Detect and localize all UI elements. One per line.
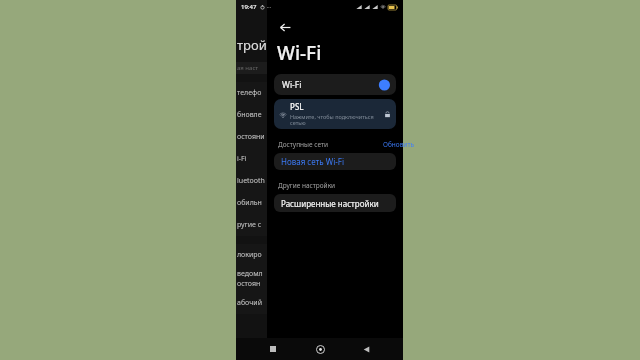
staticText: Wi-Fi <box>277 40 322 66</box>
staticText: абочий <box>237 298 262 308</box>
button[interactable]: Wi-Fi <box>274 74 396 95</box>
staticText: ведомл <box>237 269 263 279</box>
staticText: локиро <box>237 250 262 260</box>
button[interactable]: Back <box>276 18 294 36</box>
staticText: бновле <box>237 110 262 120</box>
staticText: Wi-Fi <box>282 79 302 91</box>
staticText: luetooth <box>237 176 265 186</box>
staticText: обильны <box>237 198 267 208</box>
staticText: ругие с <box>237 220 262 230</box>
button[interactable]: PSL <box>274 99 396 129</box>
staticText: Расширенные настройки <box>281 198 379 209</box>
staticText: 19:47 <box>241 3 257 11</box>
staticText: Новая сеть Wi-Fi <box>281 156 344 167</box>
staticText: PSL <box>290 101 304 112</box>
staticText: остоян <box>237 279 261 289</box>
staticText: трой <box>237 36 267 54</box>
staticText: Нажмите, чтобы подключиться сетью <box>290 113 374 127</box>
button[interactable]: Расширенные настройки <box>274 194 396 212</box>
staticText: ··· <box>267 4 272 11</box>
staticText: Другие настройки <box>278 181 336 190</box>
button[interactable]: Обновить <box>383 140 414 149</box>
staticText: ая наст <box>237 64 259 72</box>
staticText: остояни <box>237 132 265 142</box>
button[interactable]: Back <box>356 339 376 359</box>
staticText: i-Fi <box>237 154 247 164</box>
button[interactable]: Recent apps <box>263 339 283 359</box>
staticText: телефо <box>237 88 262 98</box>
button[interactable]: Home <box>310 339 330 359</box>
button[interactable]: Новая сеть Wi-Fi <box>274 153 396 170</box>
staticText: Доступные сети <box>278 140 328 149</box>
